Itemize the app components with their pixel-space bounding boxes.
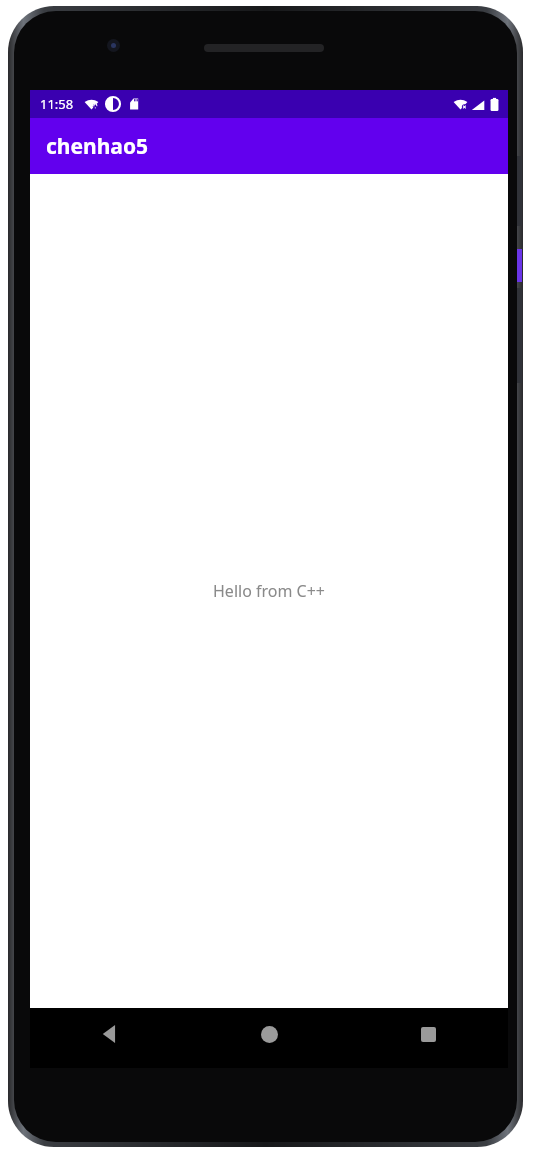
button[interactable]: Recent apps [349,1008,508,1060]
staticText: 11:58 [40,95,74,113]
staticText: chenhao5 [46,132,149,161]
button[interactable]: Home [190,1008,349,1060]
staticText: Hello from C++ [213,580,325,602]
button[interactable]: Back [30,1008,190,1060]
button[interactable]: chenhao5 [30,118,508,174]
